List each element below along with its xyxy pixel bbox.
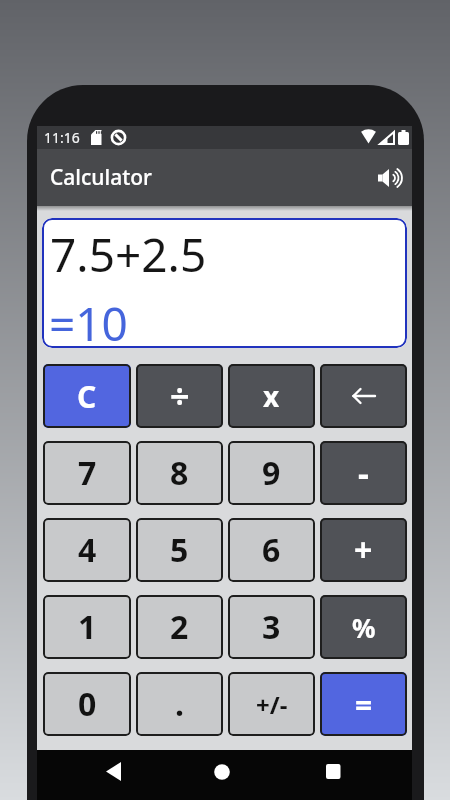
button[interactable] (320, 364, 407, 428)
button[interactable]: 1 (43, 595, 131, 659)
staticText: = (355, 684, 373, 725)
staticText: 7 (78, 451, 97, 495)
button[interactable]: - (320, 441, 407, 505)
staticText: 0 (78, 682, 97, 726)
staticText: 1 (78, 605, 97, 649)
button[interactable]: = (320, 672, 407, 736)
staticText: 3 (262, 605, 281, 649)
button[interactable]: 6 (228, 518, 315, 582)
staticText: 11:16 (44, 128, 80, 147)
button[interactable] (206, 756, 238, 788)
button[interactable]: . (136, 672, 223, 736)
button[interactable]: x (228, 364, 315, 428)
button[interactable]: 7.5+2.5 (42, 218, 407, 348)
button[interactable] (97, 756, 129, 788)
button[interactable]: 5 (136, 518, 223, 582)
staticText: +/- (256, 688, 288, 721)
staticText: - (358, 450, 369, 496)
staticText: C (77, 376, 97, 417)
staticText: % (352, 610, 376, 645)
staticText: Calculator (50, 163, 152, 192)
button[interactable]: 3 (228, 595, 315, 659)
staticText: 9 (262, 451, 281, 495)
button[interactable]: + (320, 518, 407, 582)
button[interactable] (378, 166, 404, 190)
button[interactable]: ÷ (136, 364, 223, 428)
button[interactable]: 4 (43, 518, 131, 582)
staticText: 2 (170, 605, 189, 649)
button[interactable]: C (43, 364, 131, 428)
button[interactable] (317, 756, 349, 788)
staticText: . (175, 682, 184, 726)
staticText: 4 (78, 528, 97, 572)
staticText: 8 (170, 451, 189, 495)
staticText: ÷ (170, 373, 190, 419)
button[interactable]: 2 (136, 595, 223, 659)
button[interactable]: 7 (43, 441, 131, 505)
button[interactable]: 8 (136, 441, 223, 505)
staticText: 7.5+2.5 (50, 223, 207, 286)
button[interactable]: 9 (228, 441, 315, 505)
button[interactable]: 0 (43, 672, 131, 736)
staticText: =10 (49, 292, 128, 348)
staticText: 6 (262, 528, 281, 572)
staticText: 5 (170, 528, 189, 572)
button[interactable]: +/- (228, 672, 315, 736)
staticText: x (263, 377, 280, 415)
staticText: + (354, 528, 373, 572)
button[interactable]: % (320, 595, 407, 659)
